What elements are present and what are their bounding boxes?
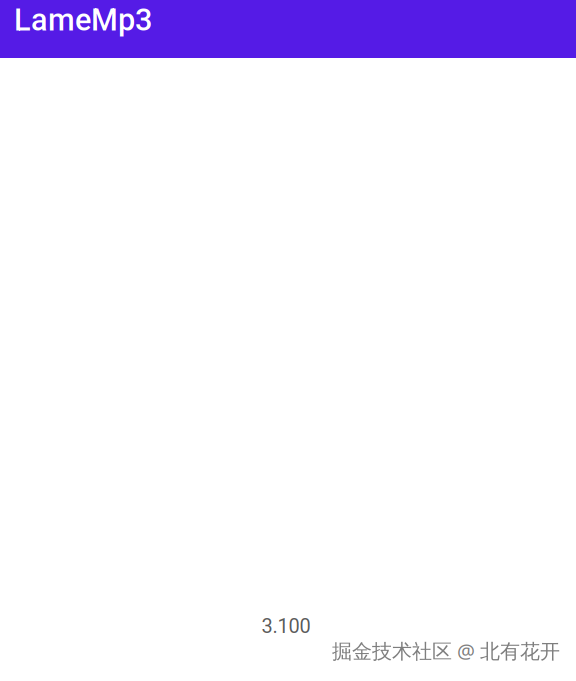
staticText: 3.100	[261, 615, 310, 638]
staticText: 掘金技术社区 @ 北有花开	[332, 637, 560, 664]
staticText: LameMp3	[14, 2, 152, 38]
